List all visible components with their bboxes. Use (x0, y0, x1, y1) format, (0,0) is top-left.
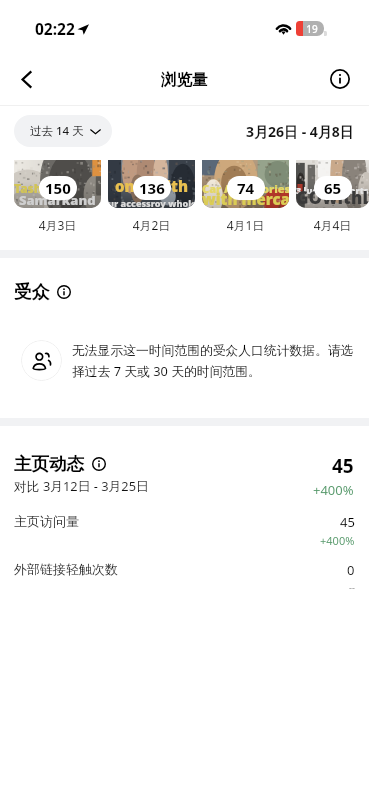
button[interactable]: Back (9, 61, 45, 97)
staticText: 45 (340, 513, 355, 531)
staticText: 3月26日 - 4月8日 (246, 122, 354, 141)
staticText: Car Accessories (202, 181, 289, 196)
staticText: 浏览量 (161, 70, 208, 90)
button[interactable]: Tash (14, 160, 101, 208)
staticText: 150 (45, 178, 71, 198)
button[interactable]: 过去 14 天 (14, 115, 112, 147)
staticText: 65 (324, 178, 342, 198)
staticText: Samarkand (19, 191, 96, 208)
staticText: 3 lucrative erts (296, 184, 369, 196)
button[interactable]: 主页访问量 (0, 513, 369, 548)
staticText: 4月2日 (108, 217, 195, 233)
staticText: 无法显示这一时间范围的受众人口统计数据。请选择过去 7 天或 30 天的时间范围… (72, 343, 360, 379)
staticText: 136 (139, 178, 165, 198)
staticText: 对比 3月12日 - 3月25日 (14, 477, 149, 494)
button[interactable]: Information (322, 61, 358, 97)
staticText: GOwithLuci (296, 186, 369, 208)
staticText: 4月3日 (14, 217, 101, 233)
staticText: 主页访问量 (14, 513, 320, 529)
staticText: 19 (298, 22, 326, 36)
staticText: +400% (320, 533, 355, 548)
staticText: 45 (332, 453, 354, 479)
staticText: 4月4日 (296, 217, 369, 233)
button[interactable]: 3 lucrative erts (296, 160, 369, 208)
button[interactable]: only with (108, 160, 195, 208)
staticText: 02:22 (35, 18, 75, 39)
staticText: Tash (14, 180, 42, 196)
staticText: 4月1日 (202, 217, 289, 233)
button[interactable]: 外部链接轻触次数 (0, 561, 369, 593)
staticText: 74 (237, 178, 255, 198)
staticText: 0 (347, 561, 355, 579)
staticText: 过去 14 天 (30, 123, 84, 139)
button[interactable]: Car Accessories (202, 160, 289, 208)
staticText: +400% (313, 481, 354, 499)
staticText: 外部链接轻触次数 (14, 561, 347, 577)
staticText: with mercan (202, 189, 289, 208)
staticText: -- (349, 581, 355, 593)
staticText: only with (115, 176, 188, 196)
staticText: ur accessroy wholesale (108, 197, 195, 208)
staticText: 主页动态 (14, 453, 84, 475)
staticText: 受众 (14, 281, 49, 303)
